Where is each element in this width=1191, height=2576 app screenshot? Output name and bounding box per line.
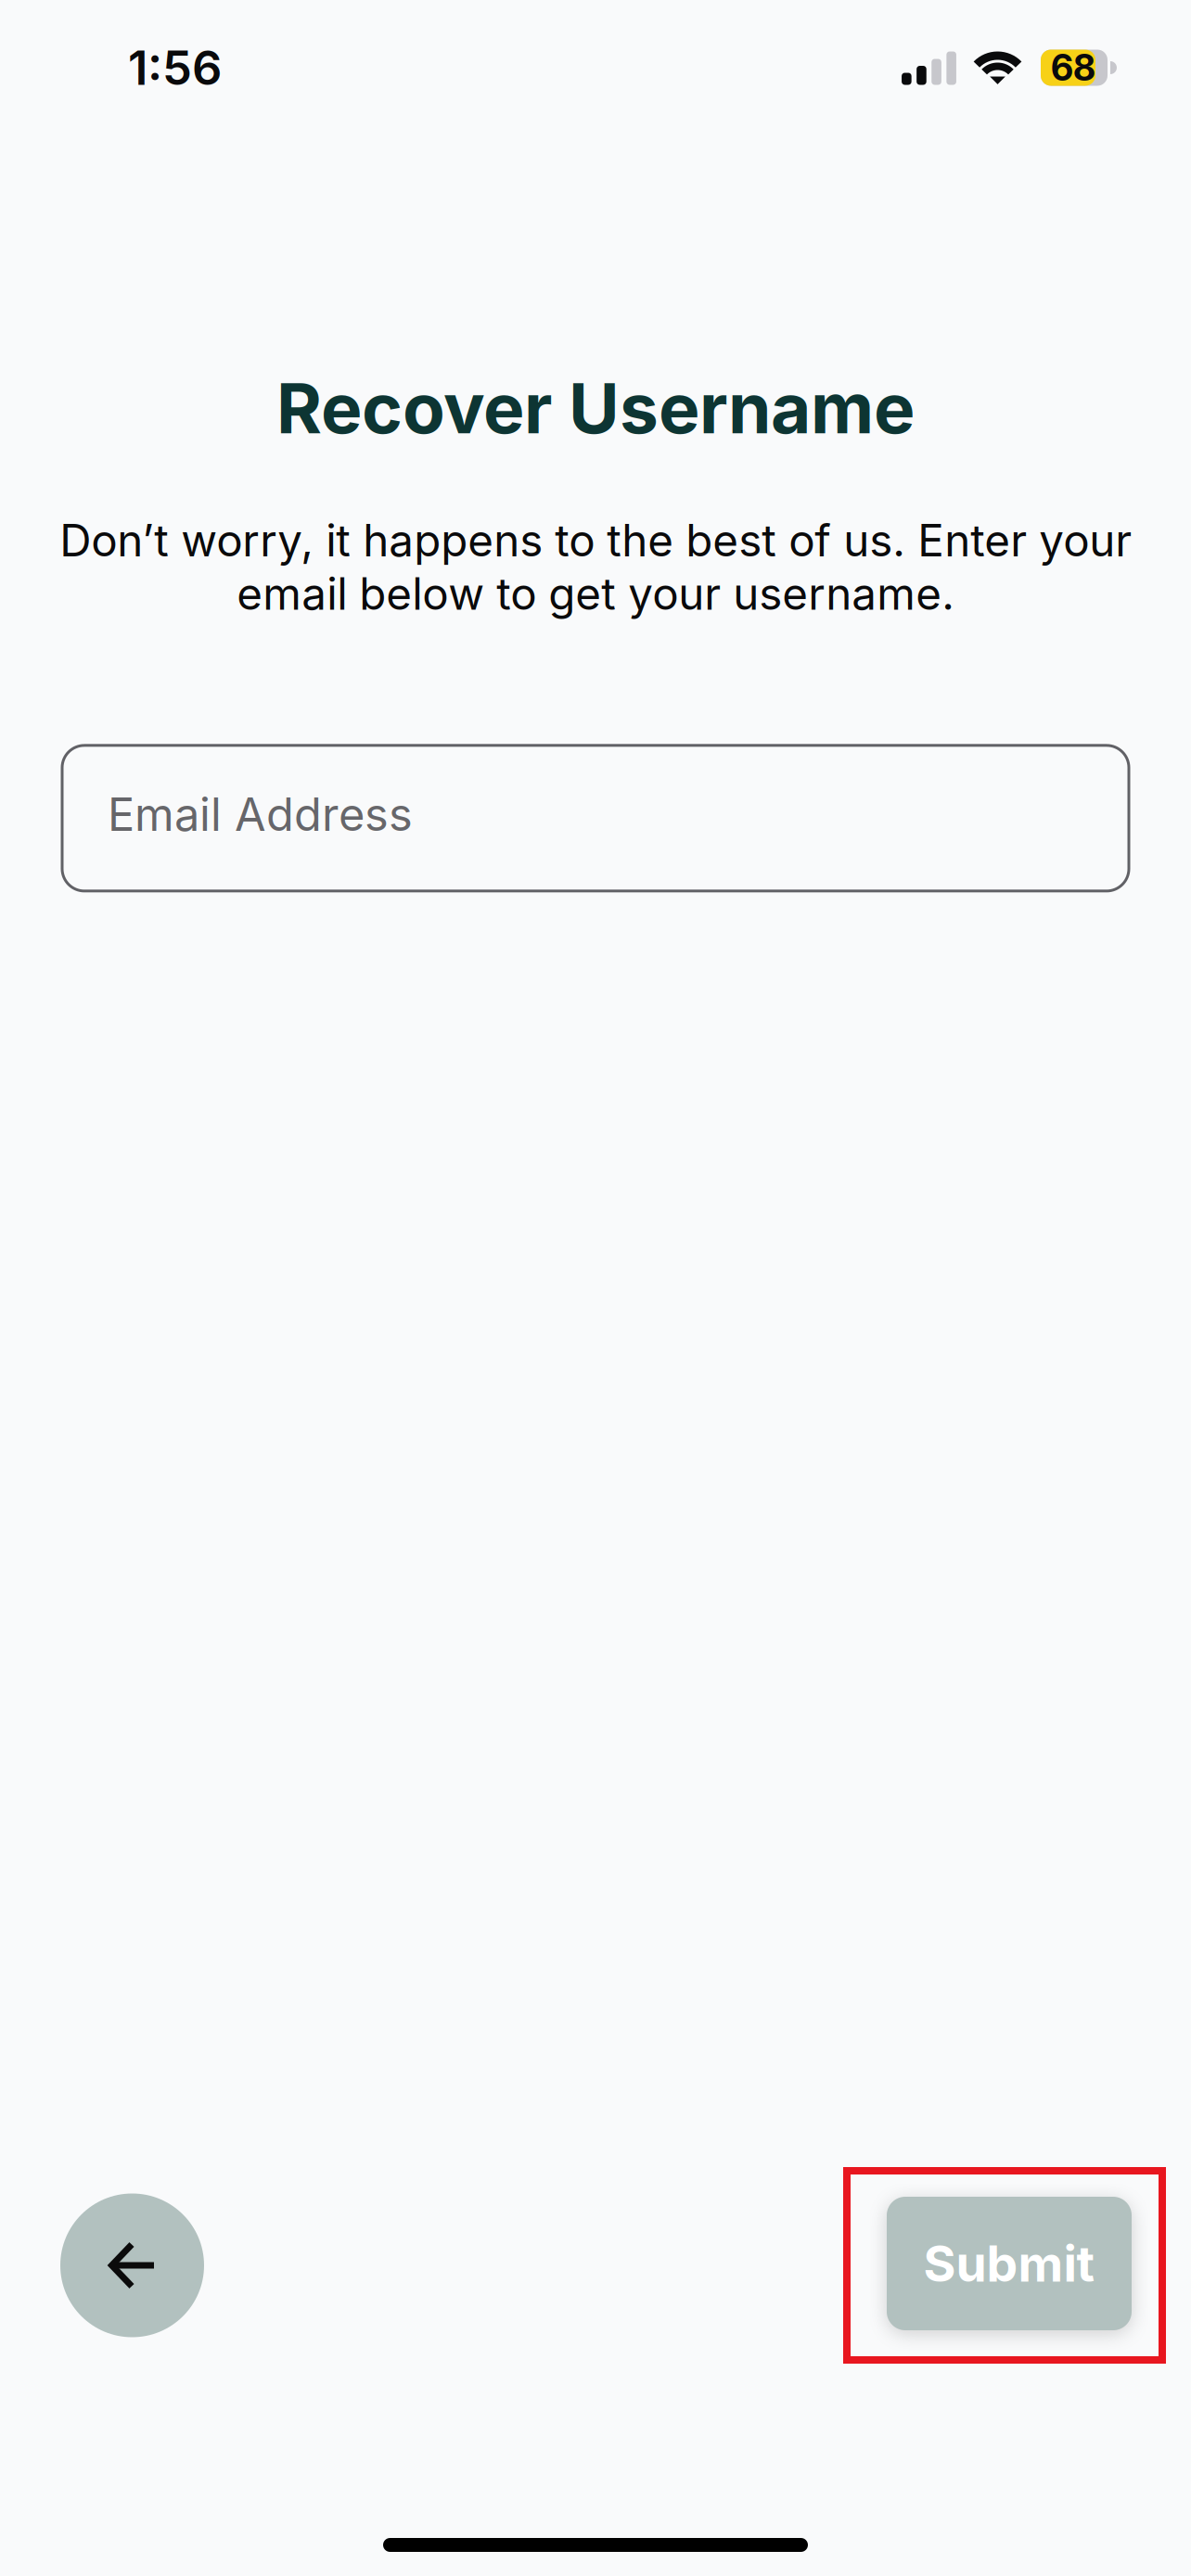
staticText: 68 (1051, 46, 1095, 89)
staticText: Email Address (108, 787, 413, 842)
staticText: Submit (923, 2234, 1095, 2293)
staticText: 1:56 (128, 39, 222, 96)
button[interactable]: Submit (887, 2197, 1132, 2330)
button[interactable]: Back (60, 2193, 204, 2337)
button[interactable]: Email Address (62, 745, 1129, 891)
staticText: Don’t worry, it happens to the best of u… (59, 514, 1132, 620)
staticText: Recover Username (276, 366, 915, 450)
